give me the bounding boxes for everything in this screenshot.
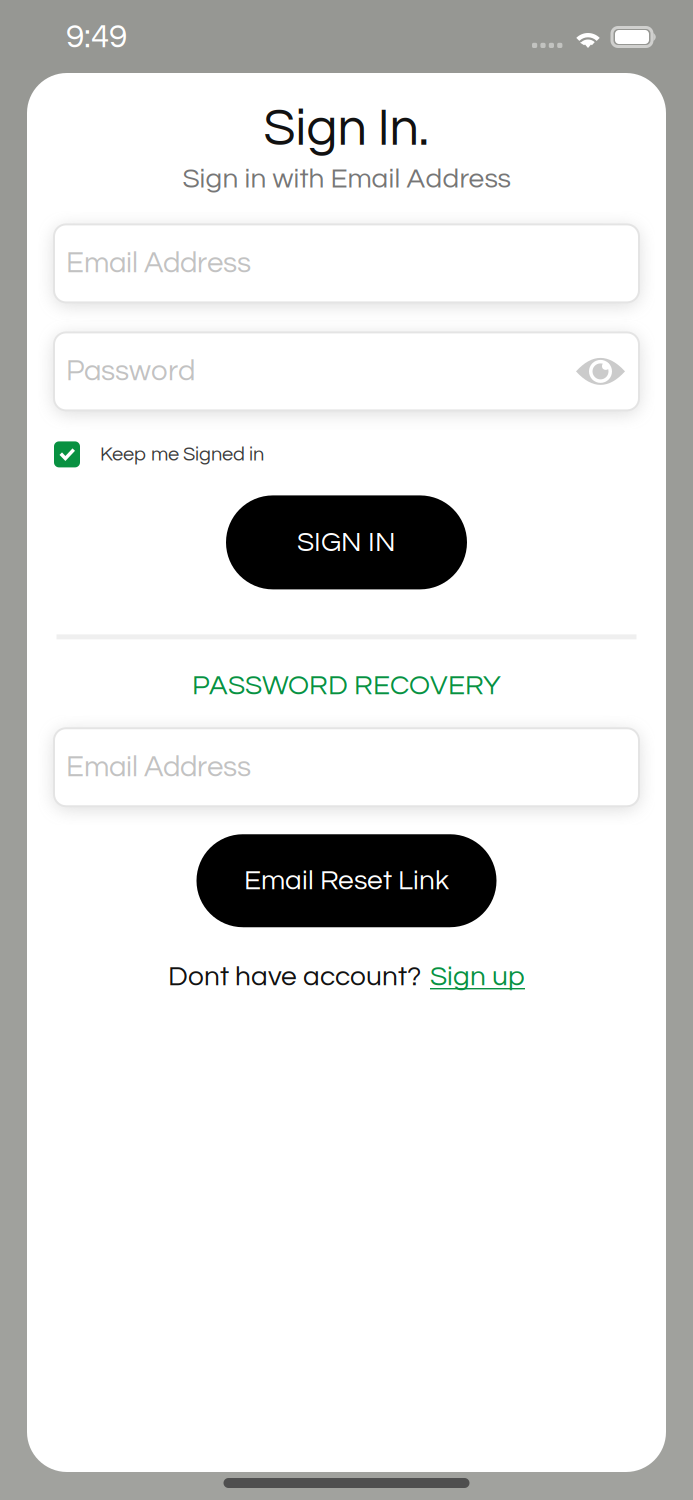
staticText: PASSWORD RECOVERY: [192, 671, 501, 700]
button[interactable]: SIGN IN: [226, 495, 467, 589]
staticText: Dont have account?: [168, 962, 421, 991]
staticText: Password: [66, 356, 195, 386]
staticText: Email Address: [66, 248, 251, 278]
button[interactable]: Sign up: [430, 962, 525, 991]
staticText: Email Reset Link: [244, 866, 449, 895]
button[interactable]: Show password: [576, 358, 625, 384]
button[interactable]: Email Reset Link: [196, 834, 496, 927]
staticText: Sign up: [430, 962, 525, 991]
staticText: Keep me Signed in: [100, 444, 264, 465]
staticText: Sign In.: [263, 102, 429, 156]
staticText: SIGN IN: [297, 528, 396, 557]
staticText: Sign in with Email Address: [182, 165, 510, 193]
staticText: Email Address: [66, 752, 251, 782]
staticText: 9:49: [66, 20, 127, 54]
button[interactable]: Keep me Signed in: [54, 441, 264, 467]
